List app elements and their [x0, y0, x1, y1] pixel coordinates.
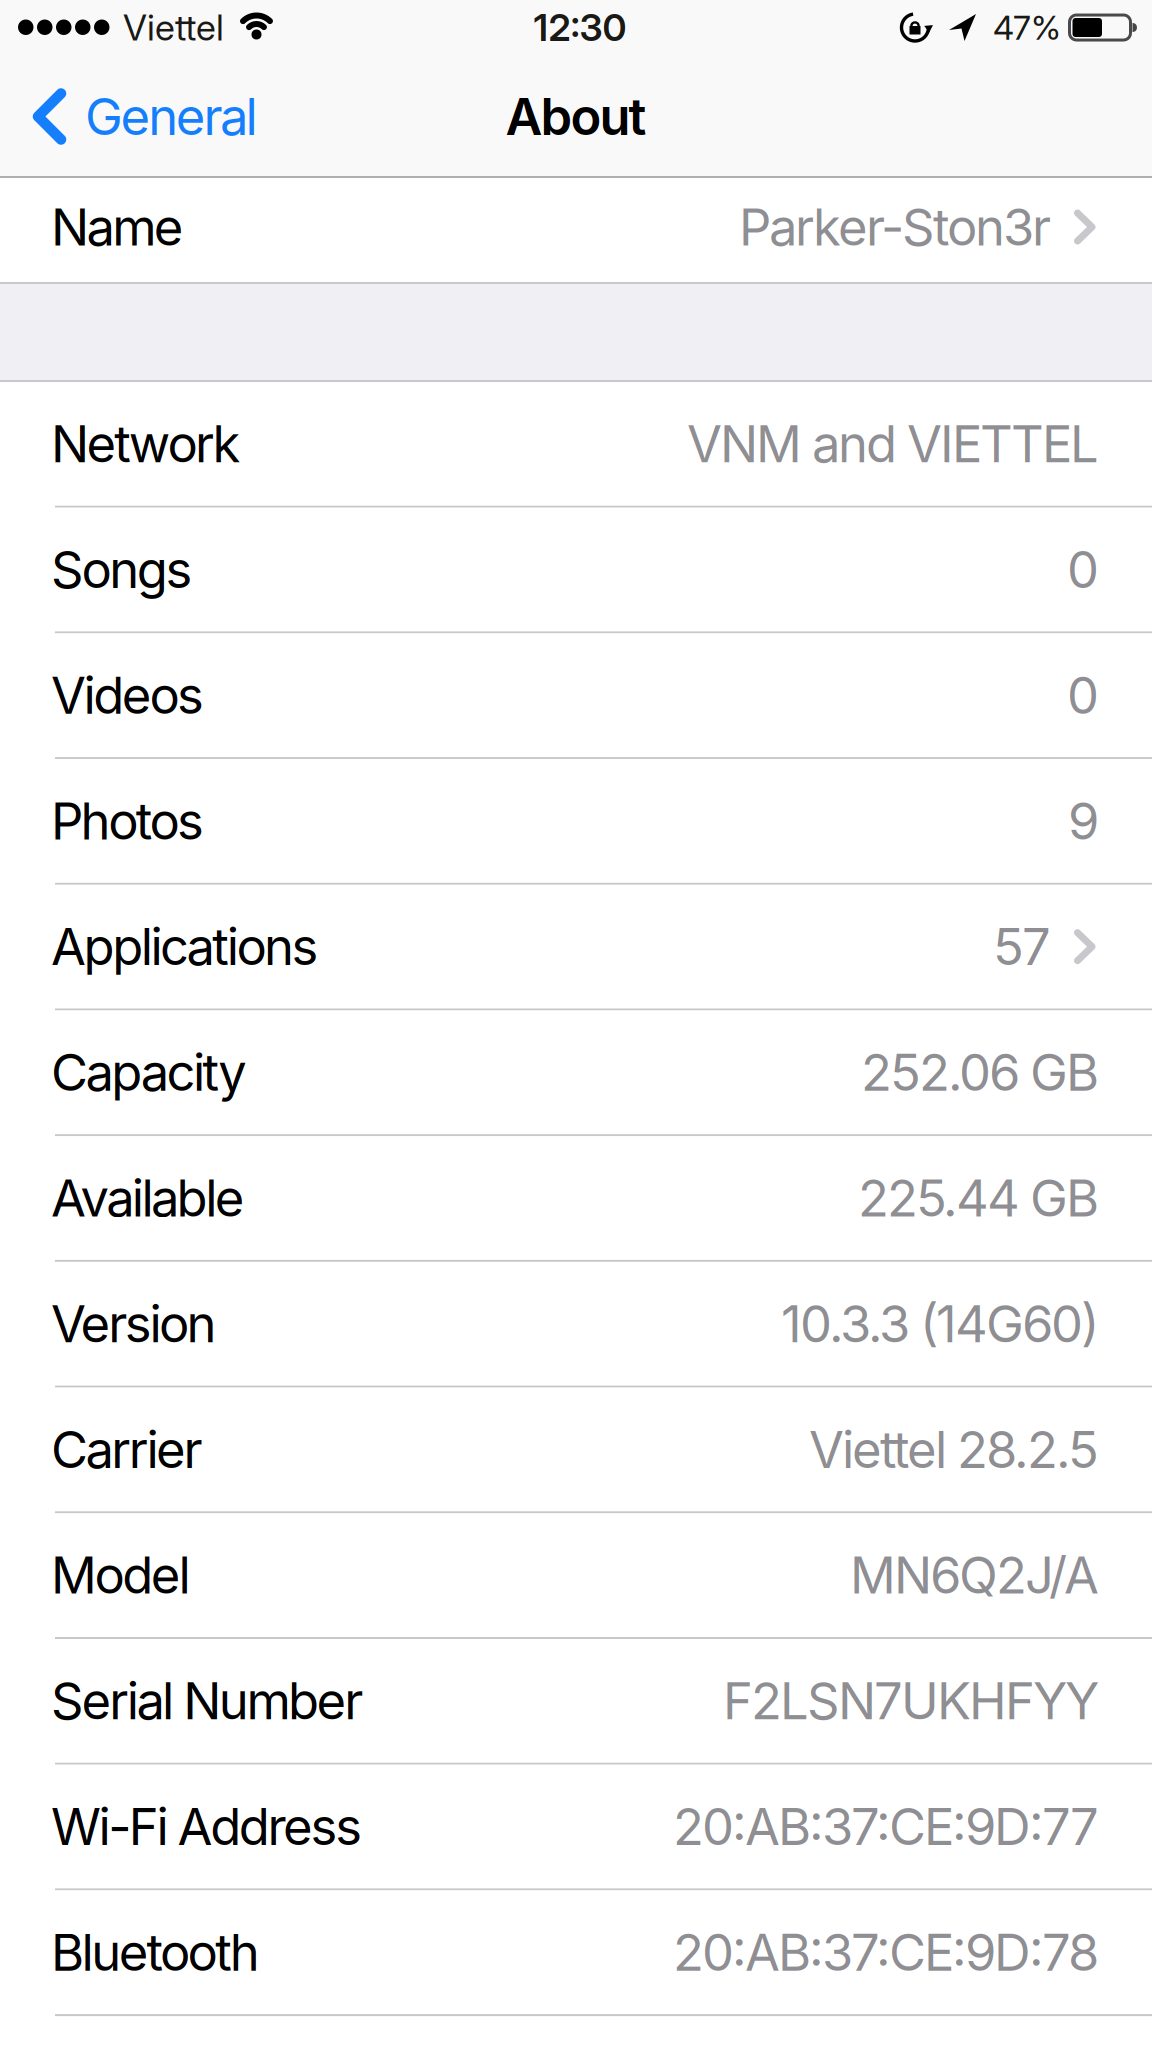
staticText: 0	[1067, 540, 1099, 599]
staticText: Photos	[51, 791, 204, 851]
staticText: Viettel 28.2.5	[809, 1420, 1099, 1479]
staticText: 10.3.3 (14G60)	[781, 1294, 1099, 1354]
button[interactable]: Applications	[0, 885, 1152, 1008]
staticText: Model	[51, 1545, 190, 1605]
staticText: Carrier	[51, 1420, 203, 1479]
staticText: Viettel	[123, 6, 224, 49]
staticText: F2LSN7UKHFYY	[723, 1671, 1099, 1731]
staticText: Applications	[51, 917, 319, 977]
staticText: Bluetooth	[51, 1922, 260, 1982]
staticText: MN6Q2J/A	[850, 1545, 1099, 1605]
staticText: 225.44 GB	[858, 1168, 1099, 1228]
button[interactable]: Back	[0, 89, 258, 148]
button[interactable]: Name	[0, 178, 1152, 282]
staticText: 20:AB:37:CE:9D:78	[673, 1922, 1099, 1982]
staticText: 20:AB:37:CE:9D:77	[673, 1797, 1099, 1856]
staticText: VNM and VIETTEL	[687, 414, 1099, 474]
staticText: Capacity	[51, 1042, 246, 1102]
staticText: Videos	[51, 665, 204, 725]
staticText: Parker-Ston3r	[739, 197, 1051, 257]
staticText: Songs	[51, 540, 192, 599]
staticText: Serial Number	[51, 1671, 363, 1731]
staticText: 9	[1068, 791, 1099, 851]
staticText: 12:30	[533, 5, 626, 49]
staticText: Wi-Fi Address	[51, 1797, 362, 1856]
staticText: Version	[51, 1294, 217, 1354]
staticText: Available	[51, 1168, 245, 1228]
staticText: Network	[51, 414, 241, 474]
staticText: About	[505, 87, 646, 146]
staticText: 47%	[993, 8, 1061, 47]
staticText: 57	[993, 917, 1051, 977]
staticText: 252.06 GB	[861, 1042, 1099, 1102]
staticText: General	[85, 87, 258, 146]
staticText: Name	[51, 197, 184, 257]
staticText: 0	[1067, 665, 1099, 725]
